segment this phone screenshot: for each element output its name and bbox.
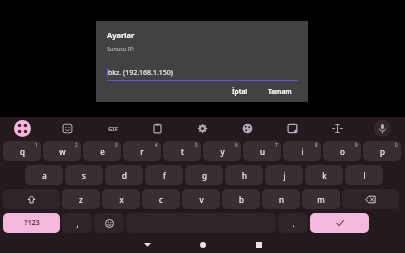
staticText: q [20,146,25,157]
button[interactable]: q [3,141,41,161]
staticText: Sunucu IP: [107,45,135,52]
button[interactable]: Backspace [342,189,399,209]
button[interactable]: i [283,141,321,161]
staticText: 2 [75,142,78,148]
staticText: 5 [195,142,198,148]
staticText: 1 [35,142,38,148]
button[interactable]: Home [189,236,217,253]
staticText: s [82,170,86,181]
button[interactable]: Theme [239,120,256,137]
staticText: r [140,146,144,157]
staticText: w [59,146,66,157]
staticText: 9 [355,142,358,148]
button[interactable]: ?123 [3,213,60,233]
staticText: v [199,194,204,205]
button[interactable]: h [225,165,263,185]
button[interactable]: , [62,213,92,233]
staticText: n [279,194,284,205]
button[interactable]: GIF [104,120,121,137]
staticText: t [181,146,184,157]
button[interactable]: Voice input [374,120,391,137]
button[interactable]: Shift [3,189,60,209]
button[interactable]: Clipboard [149,120,166,137]
staticText: i [301,146,304,157]
button[interactable]: Apps [14,120,31,137]
button[interactable]: l [345,165,383,185]
button[interactable]: s [65,165,103,185]
button[interactable]: v [182,189,220,209]
button[interactable]: Back [133,236,161,253]
button[interactable]: f [145,165,183,185]
button[interactable]: Emoji [94,213,124,233]
button[interactable]: c [142,189,180,209]
staticText: 8 [315,142,318,148]
button[interactable]: m [302,189,340,209]
staticText: . [292,218,295,229]
staticText: Tamam [268,87,292,96]
button[interactable]: g [185,165,223,185]
staticText: o [340,146,345,157]
button[interactable]: r [123,141,161,161]
staticText: b [239,194,244,205]
staticText: z [79,194,83,205]
staticText: Ayarlar [107,30,135,40]
staticText: 4 [155,142,158,148]
button[interactable]: n [262,189,300,209]
staticText: k [322,170,327,181]
button[interactable]: o [323,141,361,161]
button[interactable]: e [83,141,121,161]
button[interactable]: a [25,165,63,185]
button[interactable]: Settings [194,120,211,137]
staticText: l [363,170,366,181]
staticText: e [100,146,105,157]
staticText: h [242,170,247,181]
button[interactable]: Tamam [264,85,296,98]
staticText: , [76,218,79,229]
button[interactable]: Translate [284,120,301,137]
button[interactable]: b [222,189,260,209]
button[interactable]: . [278,213,308,233]
staticText: 3 [115,142,118,148]
staticText: 7 [275,142,278,148]
staticText: d [122,170,127,181]
button[interactable]: Enter [310,213,369,233]
button[interactable]: d [105,165,143,185]
staticText: f [163,170,166,181]
staticText: u [260,146,265,157]
button[interactable]: j [265,165,303,185]
button[interactable]: Stickers [59,120,76,137]
button[interactable]: t [163,141,201,161]
staticText: 0 [395,142,398,148]
button[interactable]: z [62,189,100,209]
staticText: c [159,194,163,205]
button[interactable]: Text edit [329,120,346,137]
button[interactable]: w [43,141,81,161]
staticText: m [317,194,325,205]
button[interactable]: y [203,141,241,161]
staticText: p [380,146,385,157]
staticText: a [42,170,47,181]
button[interactable]: u [243,141,281,161]
staticText: İptal [232,87,248,96]
staticText: x [119,194,124,205]
staticText: y [220,146,225,157]
button[interactable]: k [305,165,343,185]
staticText: GIF [108,125,118,133]
staticText: bkz. (192.168.1.150) [108,68,173,78]
button[interactable]: İptal [228,85,252,98]
button[interactable]: Recents [245,236,273,253]
button[interactable]: p [363,141,401,161]
staticText: g [202,170,207,181]
staticText: 6 [235,142,238,148]
staticText: ?123 [24,218,40,228]
button[interactable]: x [102,189,140,209]
staticText: j [283,170,286,181]
